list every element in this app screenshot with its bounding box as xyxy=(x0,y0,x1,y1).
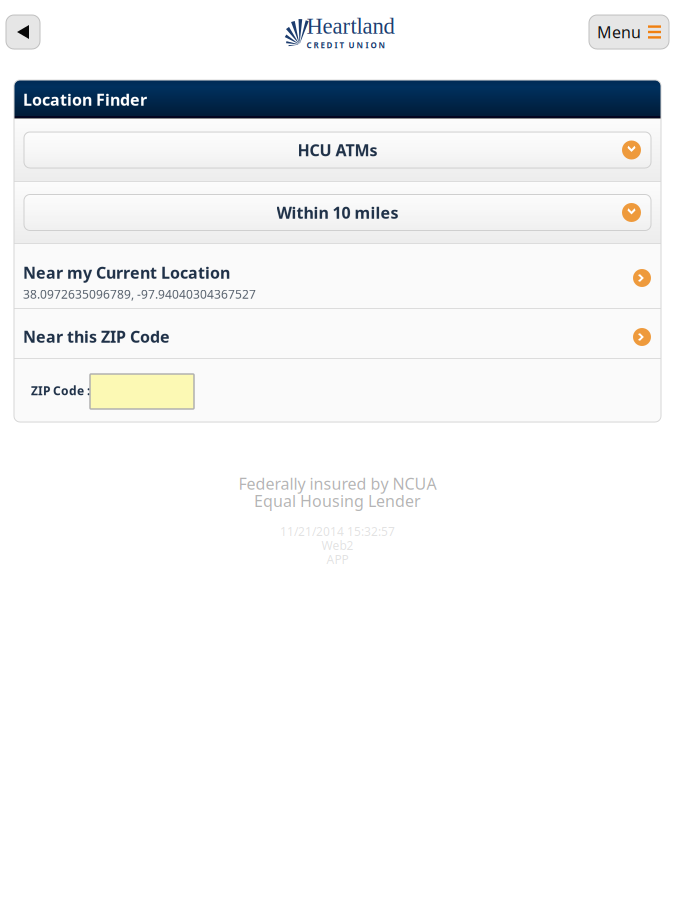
button[interactable]: Back xyxy=(6,15,40,49)
staticText: HCU ATMs xyxy=(297,139,377,161)
staticText: Equal Housing Lender xyxy=(254,490,421,511)
staticText: Within 10 miles xyxy=(276,202,398,223)
staticText: Menu xyxy=(597,21,641,43)
staticText: 11/21/2014 15:32:57 xyxy=(280,523,395,539)
staticText: Near my Current Location xyxy=(23,262,230,283)
button[interactable]: Menu xyxy=(589,15,669,49)
staticText: C R E D I T U N I O N xyxy=(306,40,385,50)
button[interactable]: Near this ZIP Code xyxy=(14,309,661,358)
staticText: ZIP Code : xyxy=(31,382,90,398)
staticText: Web2 xyxy=(321,537,353,553)
button[interactable]: Near my Current Location xyxy=(14,244,661,308)
button[interactable]: Within 10 miles xyxy=(14,182,661,243)
staticText: Near this ZIP Code xyxy=(23,326,170,347)
button[interactable]: HCU ATMs xyxy=(14,119,661,181)
staticText: Location Finder xyxy=(23,89,147,110)
staticText: Heartland xyxy=(306,14,394,39)
staticText: Federally insured by NCUA xyxy=(238,473,436,494)
staticText: 38.0972635096789, -97.94040304367527 xyxy=(23,286,256,302)
staticText: APP xyxy=(326,551,348,567)
